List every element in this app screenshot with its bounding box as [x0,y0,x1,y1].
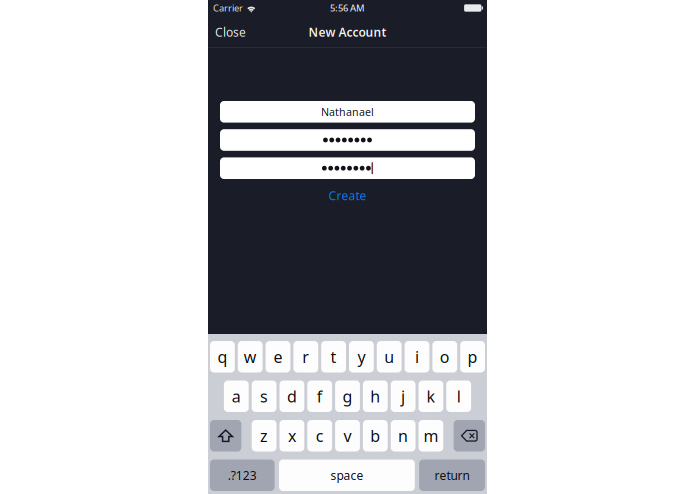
staticText: a [232,386,241,407]
staticText: n [398,425,408,446]
button[interactable]: v [335,420,360,451]
button[interactable]: g [335,380,360,412]
button[interactable]: return [419,459,485,491]
button[interactable]: l [446,380,471,412]
button[interactable]: Create [314,186,380,207]
button[interactable]: k [418,380,443,412]
staticText: v [343,425,351,446]
staticText: t [331,346,337,367]
staticText: 5:56 AM [330,2,365,14]
button[interactable]: r [293,341,318,372]
staticText: k [426,386,435,407]
staticText: q [217,346,227,367]
button[interactable]: f [307,380,332,412]
button[interactable]: q [210,341,235,372]
staticText: o [440,346,450,367]
button[interactable]: s [252,380,276,412]
staticText: b [370,425,380,446]
staticText: h [370,386,380,407]
staticText: j [401,386,405,407]
button[interactable]: Delete [454,420,485,451]
button[interactable]: n [391,420,415,451]
staticText: New Account [308,24,386,40]
button[interactable]: .?123 [210,459,275,491]
button[interactable]: i [405,341,429,372]
button[interactable]: h [363,380,388,412]
button[interactable]: j [391,380,415,412]
button[interactable]: e [266,341,290,372]
staticText: g [342,386,352,407]
staticText: Carrier [213,2,243,14]
staticText: d [287,386,297,407]
staticText: r [302,346,309,367]
staticText: .?123 [228,467,257,483]
button[interactable]: b [363,420,388,451]
staticText: y [357,346,365,367]
staticText: s [260,386,268,407]
staticText: i [415,346,419,367]
button[interactable]: d [279,380,304,412]
button[interactable]: z [252,420,276,451]
button[interactable]: m [418,420,443,451]
staticText: f [317,386,323,407]
staticText: e [273,346,282,367]
button[interactable]: w [238,341,263,372]
button[interactable]: Close [208,16,253,48]
staticText: Create [328,188,366,203]
staticText: p [468,346,478,367]
button[interactable]: u [377,341,402,372]
button[interactable]: t [321,341,346,372]
staticText: m [423,425,438,446]
staticText: z [260,425,268,446]
staticText: return [435,467,470,483]
button[interactable]: c [307,420,332,451]
button[interactable]: space [279,459,415,491]
staticText: x [288,425,296,446]
button[interactable]: x [279,420,304,451]
button[interactable]: Shift [210,420,241,451]
staticText: c [316,425,324,446]
staticText: space [330,467,363,483]
button[interactable]: a [224,380,249,412]
button[interactable]: o [432,341,457,372]
button[interactable]: p [460,341,485,372]
staticText: Close [215,24,246,40]
button[interactable]: y [349,341,374,372]
staticText: w [244,346,257,367]
staticText: Nathanael [321,105,374,119]
staticText: u [384,346,394,367]
staticText: l [457,386,461,407]
